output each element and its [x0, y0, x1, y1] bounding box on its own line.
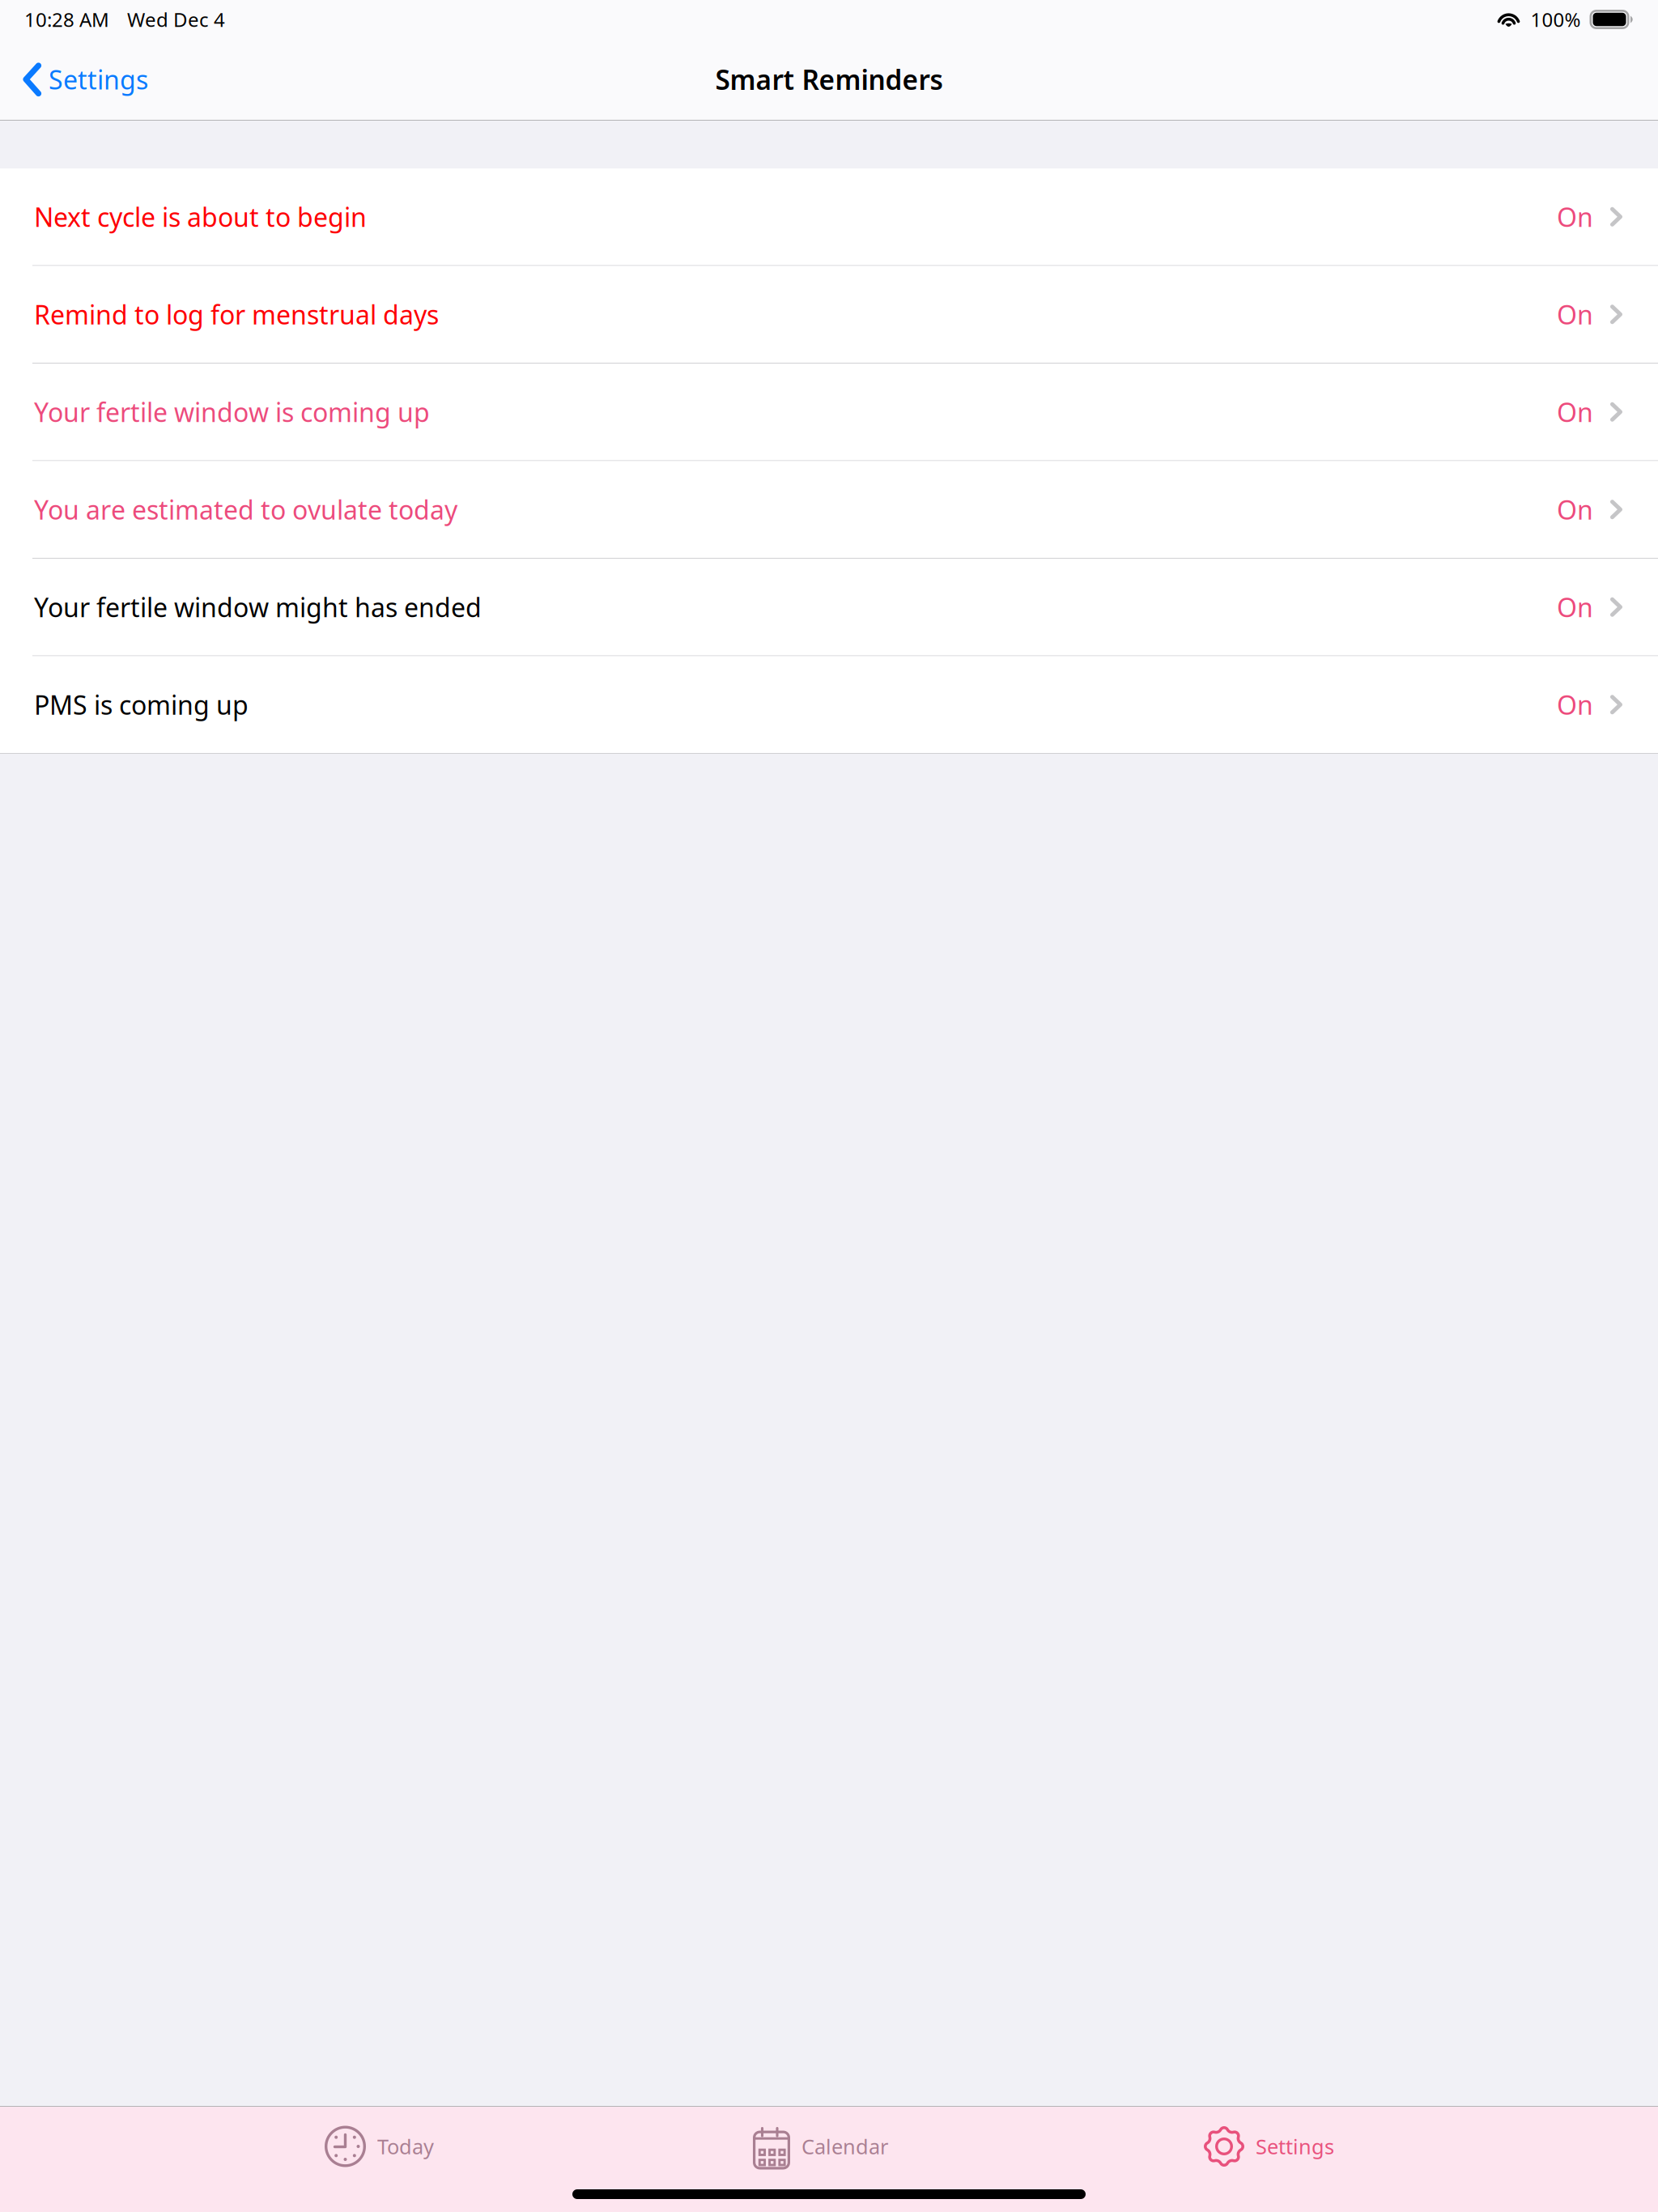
staticText: Your fertile window might has ended	[34, 590, 482, 624]
staticText: On	[1557, 395, 1593, 429]
button[interactable]: PMS is coming up	[0, 656, 1658, 753]
staticText: 10:28 AM	[24, 7, 109, 32]
staticText: On	[1557, 687, 1593, 722]
staticText: Wed Dec 4	[127, 7, 225, 32]
button[interactable]: Your fertile window is coming up	[0, 364, 1658, 461]
staticText: Settings	[49, 62, 148, 97]
button[interactable]: Settings	[0, 39, 163, 120]
staticText: PMS is coming up	[34, 687, 249, 722]
button[interactable]: Today	[310, 2110, 449, 2183]
button[interactable]: Calendar	[738, 2107, 903, 2186]
staticText: You are estimated to ovulate today	[34, 492, 457, 527]
staticText: Remind to log for menstrual days	[34, 297, 439, 332]
staticText: Settings	[1256, 2133, 1334, 2160]
staticText: Calendar	[801, 2133, 888, 2160]
staticText: Today	[377, 2133, 434, 2160]
staticText: On	[1557, 200, 1593, 234]
staticText: On	[1557, 590, 1593, 624]
button[interactable]: Remind to log for menstrual days	[0, 266, 1658, 364]
button[interactable]: You are estimated to ovulate today	[0, 461, 1658, 559]
staticText: Smart Reminders	[715, 61, 943, 97]
button[interactable]: Your fertile window might has ended	[0, 559, 1658, 656]
staticText: Next cycle is about to begin	[34, 200, 367, 234]
button[interactable]: Settings	[1189, 2110, 1349, 2183]
staticText: 100%	[1530, 7, 1581, 32]
staticText: On	[1557, 297, 1593, 332]
staticText: On	[1557, 492, 1593, 527]
button[interactable]: Next cycle is about to begin	[0, 168, 1658, 266]
staticText: Your fertile window is coming up	[34, 395, 430, 429]
